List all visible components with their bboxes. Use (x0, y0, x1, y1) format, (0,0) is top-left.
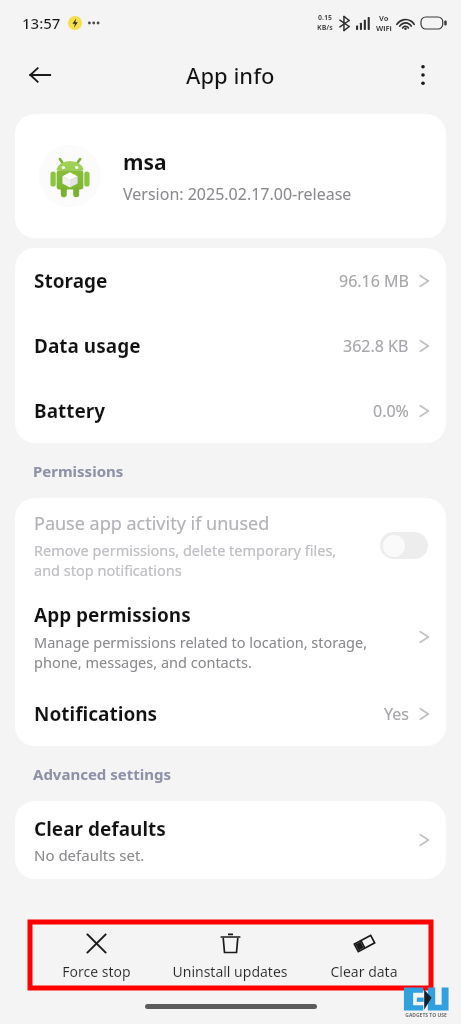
staticText: GADGETS TO USE (405, 1012, 447, 1019)
staticText: 13:57 (22, 13, 61, 33)
staticText: Force stop (62, 962, 131, 981)
staticText: msa (123, 148, 167, 177)
staticText: Clear data (330, 962, 398, 981)
staticText: and stop notifications (34, 560, 182, 580)
staticText: App permissions (34, 602, 191, 628)
button[interactable]: Clear data (297, 922, 431, 988)
staticText: Manage permissions related to location, … (34, 632, 368, 652)
staticText: KB/s (317, 23, 333, 33)
staticText: Pause app activity if unused (34, 511, 270, 536)
button[interactable]: Storage (15, 248, 446, 313)
button[interactable]: Uninstall updates (163, 922, 297, 988)
staticText: No defaults set. (34, 845, 145, 865)
staticText: Yes (384, 703, 409, 725)
staticText: Clear defaults (34, 816, 166, 842)
staticText: Data usage (34, 333, 141, 359)
button[interactable]: Clear defaults (15, 801, 446, 879)
staticText: Storage (34, 268, 108, 294)
staticText: 362.8 KB (343, 335, 409, 357)
staticText: WiFi (376, 23, 392, 33)
staticText: Advanced settings (33, 764, 171, 784)
button[interactable]: Battery (15, 378, 446, 443)
button[interactable]: App permissions (15, 593, 446, 681)
button[interactable]: More options (401, 53, 445, 97)
staticText: Notifications (34, 701, 158, 727)
staticText: 96.16 MB (339, 270, 409, 292)
button[interactable]: Back (16, 51, 64, 99)
button[interactable]: Pause app activity toggle (380, 532, 428, 559)
button[interactable]: Pause app activity if unused (15, 498, 446, 593)
staticText: phone, messages, and contacts. (34, 652, 252, 672)
staticText: Remove permissions, delete temporary fil… (34, 540, 337, 560)
staticText: 0.15 (318, 13, 332, 23)
staticText: Vo (379, 13, 389, 23)
staticText: Uninstall updates (172, 962, 288, 981)
staticText: Permissions (33, 461, 124, 481)
button[interactable]: Notifications (15, 681, 446, 746)
staticText: 0.0% (373, 400, 409, 422)
staticText: Version: 2025.02.17.00-release (123, 183, 352, 205)
staticText: App info (186, 60, 275, 90)
staticText: Battery (34, 398, 106, 424)
button[interactable]: Data usage (15, 313, 446, 378)
button[interactable]: Force stop (30, 922, 163, 988)
